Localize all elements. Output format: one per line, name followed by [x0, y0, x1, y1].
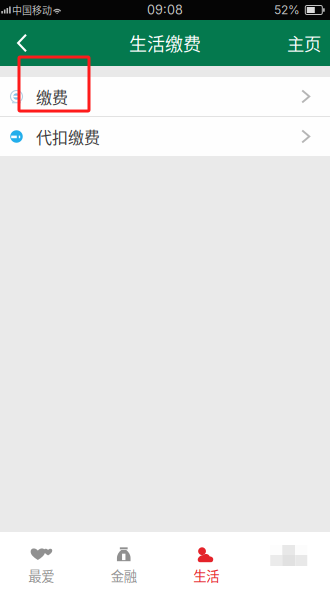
button[interactable]: 缴费 [0, 77, 330, 116]
staticText: 生活缴费 [129, 30, 201, 56]
staticText: 52% [274, 3, 300, 17]
button[interactable]: More [247, 532, 330, 589]
button[interactable]: 最爱 [0, 532, 82, 589]
button[interactable]: 生活 [165, 532, 247, 589]
staticText: 最爱 [28, 566, 54, 585]
button[interactable]: Back [0, 20, 44, 66]
staticText: 09:08 [147, 2, 183, 18]
button[interactable]: 代扣缴费 [0, 117, 330, 156]
staticText: 缴费 [36, 85, 68, 108]
button[interactable]: 主页 [278, 20, 330, 66]
staticText: 生活 [193, 566, 219, 585]
staticText: 代扣缴费 [36, 125, 100, 148]
staticText: 中国移动 [12, 3, 52, 17]
staticText: 金融 [111, 566, 137, 585]
button[interactable]: 金融 [82, 532, 165, 589]
staticText: 主页 [287, 30, 321, 56]
